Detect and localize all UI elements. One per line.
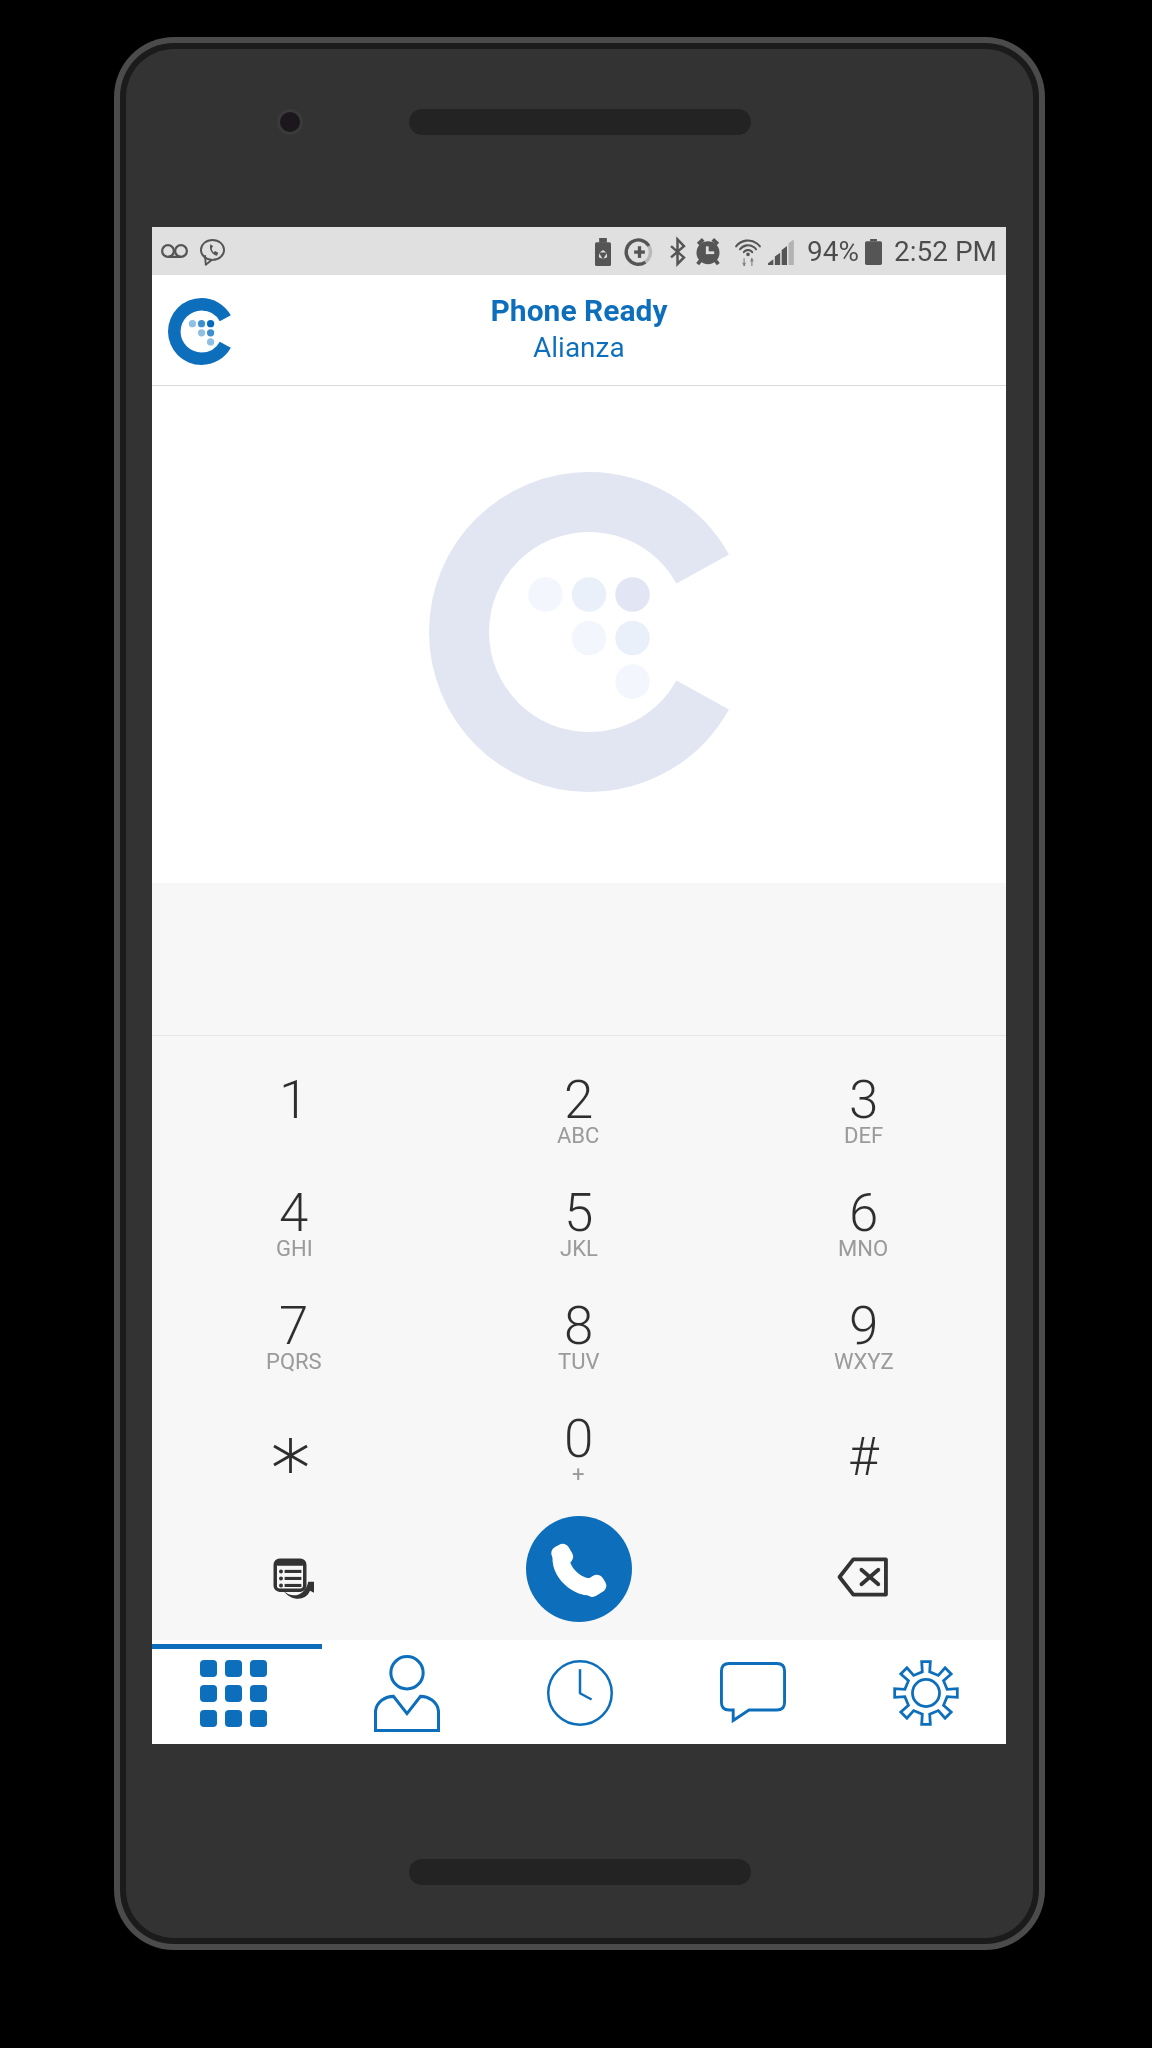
button[interactable]: Call (526, 1516, 632, 1622)
staticText: 4 (279, 1182, 309, 1244)
button[interactable]: Dialpad (152, 1640, 322, 1744)
button[interactable]: Backspace (721, 1488, 1006, 1640)
staticText: GHI (276, 1236, 313, 1262)
staticText: 1 (279, 1069, 309, 1131)
staticText: 5 (564, 1182, 594, 1244)
button[interactable]: Add note (152, 1488, 436, 1640)
staticText: 8 (564, 1295, 594, 1357)
staticText: Phone Ready (490, 293, 668, 328)
button[interactable]: 8 (436, 1262, 721, 1375)
button[interactable]: 5 (436, 1149, 721, 1262)
button[interactable] (152, 1375, 436, 1488)
staticText: JKL (560, 1236, 598, 1262)
button[interactable]: 1 (152, 1036, 436, 1149)
staticText: TUV (558, 1349, 600, 1375)
button[interactable]: Contacts (322, 1640, 493, 1744)
staticText: 94% (807, 235, 859, 268)
staticText: Alianza (533, 331, 625, 364)
staticText: + (572, 1462, 585, 1488)
button[interactable]: 6 (721, 1149, 1006, 1262)
staticText: 2 (564, 1069, 594, 1131)
button[interactable]: 0 (436, 1375, 721, 1488)
button[interactable]: 3 (721, 1036, 1006, 1149)
staticText: 0 (564, 1408, 594, 1470)
button[interactable]: 7 (152, 1262, 436, 1375)
button[interactable]: 4 (152, 1149, 436, 1262)
button[interactable]: Recents (493, 1640, 664, 1744)
button[interactable]: 2 (436, 1036, 721, 1149)
button[interactable]: # (721, 1375, 1006, 1488)
button[interactable]: 9 (721, 1262, 1006, 1375)
staticText: 2:52 PM (894, 235, 998, 268)
staticText: 3 (849, 1069, 879, 1131)
staticText: WXYZ (834, 1349, 894, 1375)
staticText: PQRS (266, 1349, 322, 1375)
staticText: 6 (849, 1182, 879, 1244)
staticText: ABC (557, 1123, 600, 1149)
button[interactable]: Messages (664, 1640, 835, 1744)
staticText: 7 (279, 1295, 309, 1357)
staticText: 9 (849, 1295, 879, 1357)
staticText: # (848, 1426, 879, 1488)
staticText: MNO (838, 1236, 889, 1262)
staticText: DEF (844, 1123, 884, 1149)
button[interactable]: Settings (835, 1640, 1006, 1744)
